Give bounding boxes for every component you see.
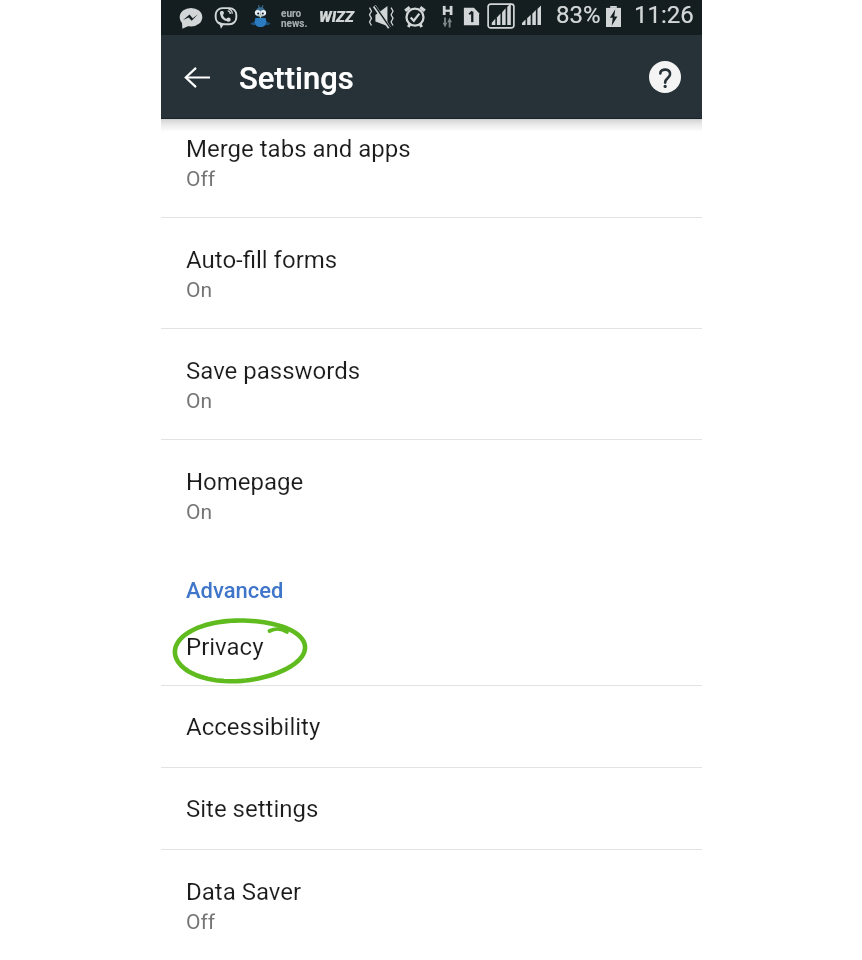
staticText: On xyxy=(186,389,213,414)
button[interactable]: Accessibility xyxy=(161,686,702,767)
button[interactable]: Back xyxy=(174,54,220,100)
staticText: Advanced xyxy=(186,578,284,604)
button[interactable]: Privacy xyxy=(161,615,702,685)
staticText: Settings xyxy=(239,60,354,96)
staticText: Save passwords xyxy=(186,357,361,385)
staticText: euro news. xyxy=(281,8,308,29)
staticText: 83% xyxy=(556,1,601,29)
button[interactable]: Homepage xyxy=(161,440,702,550)
button[interactable]: Data Saver xyxy=(161,850,702,960)
staticText: Data Saver xyxy=(186,878,302,906)
staticText: 11:26 xyxy=(634,1,694,29)
staticText: Accessibility xyxy=(186,713,321,741)
staticText: Off xyxy=(186,167,216,192)
staticText: WIZZ xyxy=(319,8,354,26)
staticText: On xyxy=(186,278,213,303)
staticText: Merge tabs and apps xyxy=(186,135,411,163)
staticText: Off xyxy=(186,910,216,935)
button[interactable]: Help xyxy=(641,53,689,101)
staticText: Site settings xyxy=(186,795,319,823)
button[interactable]: Auto-fill forms xyxy=(161,218,702,328)
button[interactable]: Site settings xyxy=(161,768,702,849)
staticText: On xyxy=(186,500,213,525)
button[interactable]: Merge tabs and apps xyxy=(161,107,702,217)
staticText: Privacy xyxy=(186,633,264,661)
staticText: Auto-fill forms xyxy=(186,246,338,274)
button[interactable]: Save passwords xyxy=(161,329,702,439)
staticText: Homepage xyxy=(186,468,304,496)
